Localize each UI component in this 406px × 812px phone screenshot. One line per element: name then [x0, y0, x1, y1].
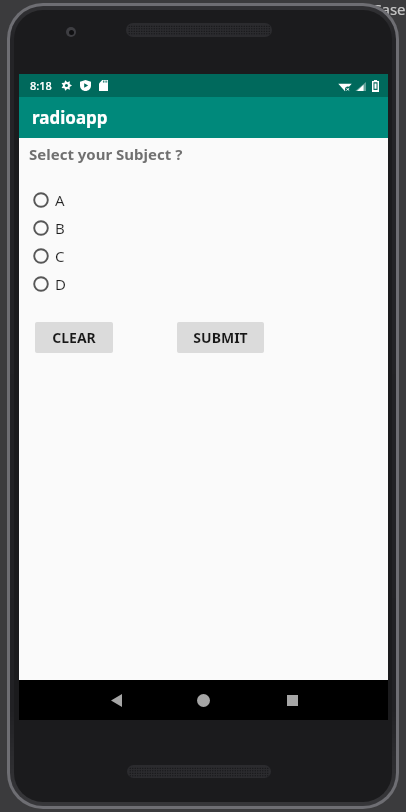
button[interactable]: C	[19, 242, 388, 270]
staticText: B	[55, 218, 65, 238]
staticText: radioapp	[32, 106, 108, 129]
button[interactable]: Back	[93, 680, 139, 720]
staticText: CLEAR	[52, 328, 96, 347]
button[interactable]: D	[19, 270, 388, 298]
button[interactable]: CLEAR	[35, 322, 113, 353]
button[interactable]: Home	[180, 680, 226, 720]
button[interactable]: SUBMIT	[177, 322, 264, 353]
staticText: SUBMIT	[193, 328, 248, 347]
staticText: D	[55, 274, 66, 294]
staticText: C	[55, 246, 65, 266]
button[interactable]: B	[19, 214, 388, 242]
staticText: 8:18	[30, 78, 52, 93]
staticText: Select your Subject ?	[29, 144, 183, 164]
staticText: Case	[372, 0, 406, 19]
staticText: A	[55, 190, 65, 210]
button[interactable]: A	[19, 186, 388, 214]
button[interactable]: Recent apps	[269, 680, 315, 720]
